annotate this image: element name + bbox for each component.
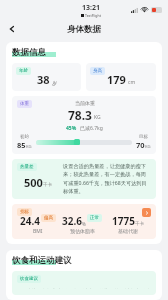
button[interactable]: 指标 (12, 204, 156, 239)
staticText: 饮食建议 (20, 276, 38, 282)
staticText: 1775 (112, 214, 135, 228)
button[interactable]: More details (142, 208, 151, 217)
staticText: 年龄 (19, 68, 28, 74)
staticText: 热量差 (20, 164, 34, 170)
staticText: 78.3 (68, 107, 92, 123)
staticText: 13:21 (82, 3, 100, 13)
staticText: 数据信息 (12, 47, 46, 58)
staticText: 当前体重 (75, 100, 95, 106)
staticText: 32.6 (62, 214, 82, 228)
staticText: 38 (37, 72, 50, 87)
staticText: KG (94, 114, 101, 121)
staticText: 千卡 (135, 221, 144, 227)
staticText: 岁 (52, 80, 57, 86)
staticText: KG (26, 144, 32, 150)
staticText: % (82, 221, 86, 227)
button[interactable]: 体重 (12, 96, 156, 154)
staticText: 身体数据 (67, 24, 101, 35)
staticText: TextFlight (85, 13, 101, 18)
staticText: 45% (66, 125, 77, 132)
staticText: 体重 (20, 101, 29, 107)
staticText: 基础代谢 (118, 228, 138, 234)
staticText: 目标 (139, 134, 148, 140)
staticText: 建议饮食摄入上不要有「过大」的热量差，以免出于难以忍受的强烈饥饿感，导致减重无法… (26, 288, 151, 289)
staticText: 24.4 (20, 214, 40, 228)
staticText: BMI (33, 228, 43, 235)
staticText: 500 (24, 175, 43, 190)
staticText: 身高 (93, 68, 102, 74)
staticText: 179 (107, 72, 126, 87)
staticText: 指标 (20, 209, 29, 215)
button[interactable]: 年龄 (12, 63, 81, 91)
button[interactable]: Back (4, 21, 20, 37)
staticText: 千卡 (43, 182, 52, 188)
staticText: 70 (136, 140, 145, 150)
button[interactable]: 身高 (86, 63, 156, 91)
staticText: 偏高 (44, 215, 53, 221)
staticText: KG (145, 144, 151, 150)
staticText: 85 (17, 140, 26, 150)
staticText: cm (128, 79, 136, 86)
staticText: 初始 (20, 134, 29, 140)
staticText: 饮食和运动建议 (12, 255, 72, 266)
staticText: 正常 (90, 215, 99, 221)
staticText: 预估体脂率 (70, 228, 95, 234)
staticText: 设置合适的热量差，让您健康的瘦下来；较此热量差，有一定挑战，每周可减重0.66千… (63, 163, 151, 195)
button[interactable]: 热量差 (12, 159, 156, 199)
staticText: 已减6.7kg (80, 125, 103, 132)
